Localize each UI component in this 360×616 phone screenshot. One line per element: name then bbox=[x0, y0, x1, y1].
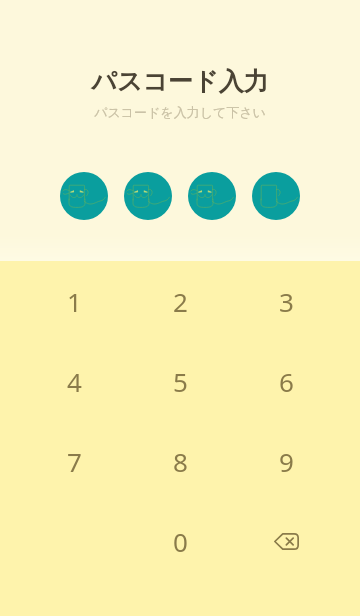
staticText: 9 bbox=[279, 444, 294, 479]
button[interactable]: 8 bbox=[127, 421, 233, 501]
button[interactable]: Delete last digit bbox=[233, 501, 339, 581]
button[interactable]: 0 bbox=[127, 501, 233, 581]
button[interactable]: 5 bbox=[127, 341, 233, 421]
staticText: 7 bbox=[67, 444, 82, 479]
staticText: パスコード入力 bbox=[91, 66, 269, 97]
button[interactable]: 6 bbox=[233, 341, 339, 421]
staticText: 8 bbox=[173, 444, 188, 479]
staticText: 0 bbox=[173, 524, 188, 559]
button[interactable]: 2 bbox=[127, 261, 233, 341]
staticText: 3 bbox=[279, 284, 294, 319]
button[interactable]: 4 bbox=[21, 341, 127, 421]
staticText: 6 bbox=[279, 364, 294, 399]
staticText: パスコードを入力して下さい bbox=[94, 104, 266, 120]
button[interactable]: 9 bbox=[233, 421, 339, 501]
staticText: 5 bbox=[173, 364, 188, 399]
staticText: 2 bbox=[173, 284, 188, 319]
button[interactable]: 7 bbox=[21, 421, 127, 501]
staticText: 1 bbox=[67, 284, 82, 319]
button[interactable]: 3 bbox=[233, 261, 339, 341]
button[interactable]: 1 bbox=[21, 261, 127, 341]
staticText: 4 bbox=[67, 364, 82, 399]
